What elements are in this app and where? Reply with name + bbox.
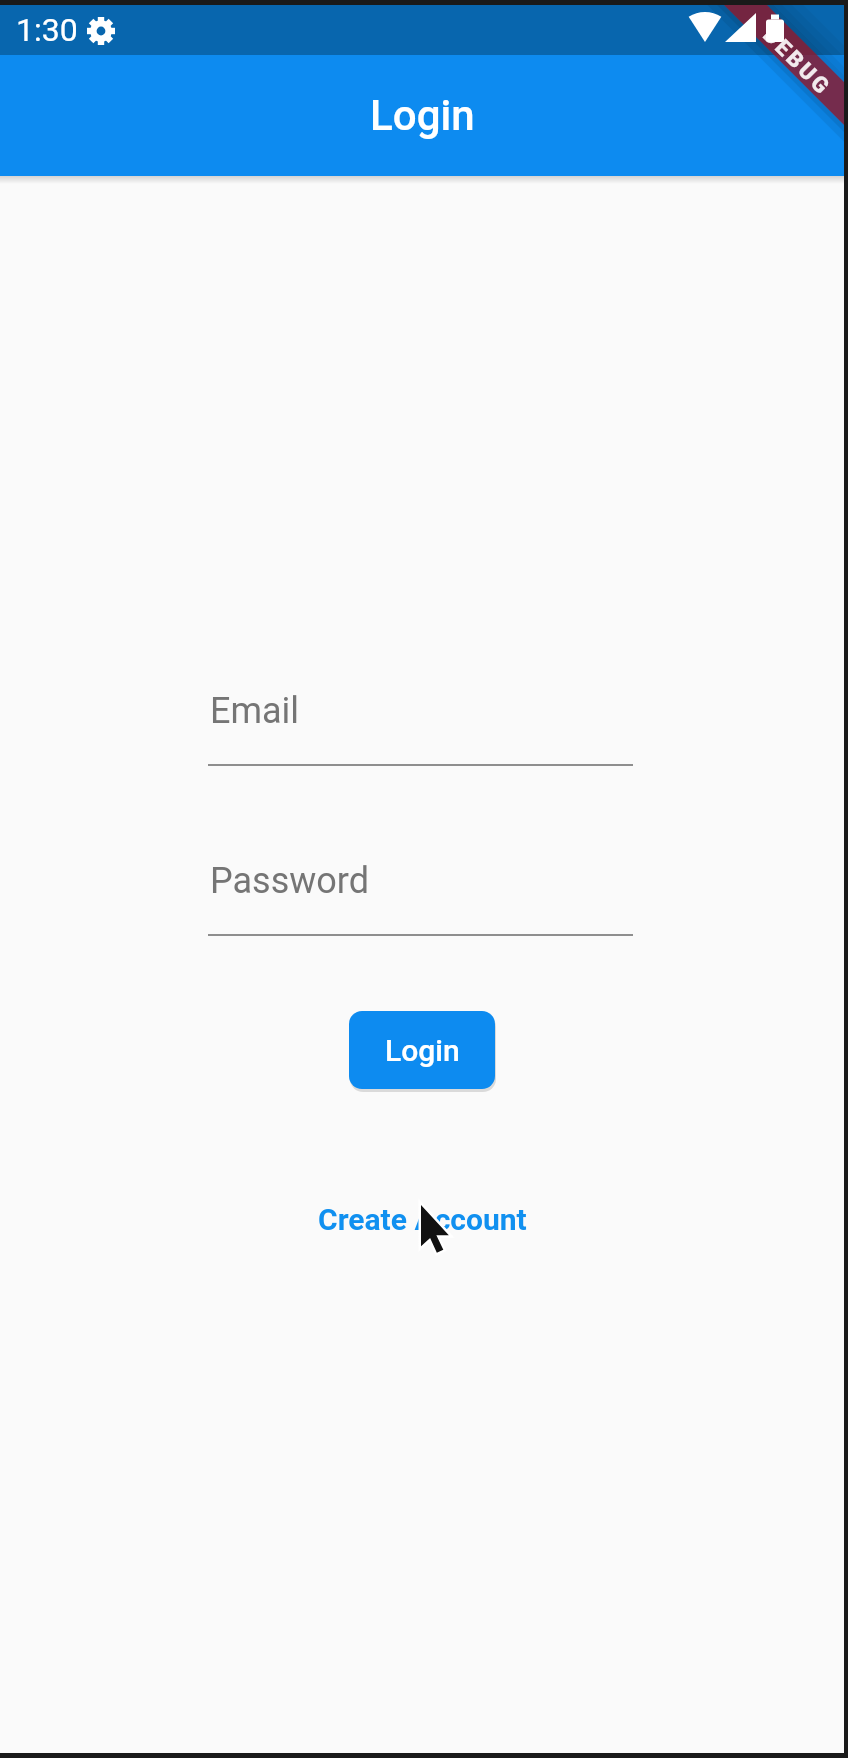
staticText: 1:30 <box>16 11 78 49</box>
button[interactable]: Email <box>208 674 633 766</box>
button[interactable]: Create Account <box>318 1202 527 1237</box>
staticText: Login <box>385 1033 460 1068</box>
button[interactable]: Password <box>208 844 633 936</box>
staticText: DEBUG <box>757 22 837 102</box>
staticText: Password <box>210 860 370 902</box>
staticText: Email <box>210 690 300 732</box>
button[interactable]: Login <box>349 1011 495 1089</box>
staticText: Login <box>370 91 475 140</box>
staticText: Create Account <box>318 1202 527 1237</box>
